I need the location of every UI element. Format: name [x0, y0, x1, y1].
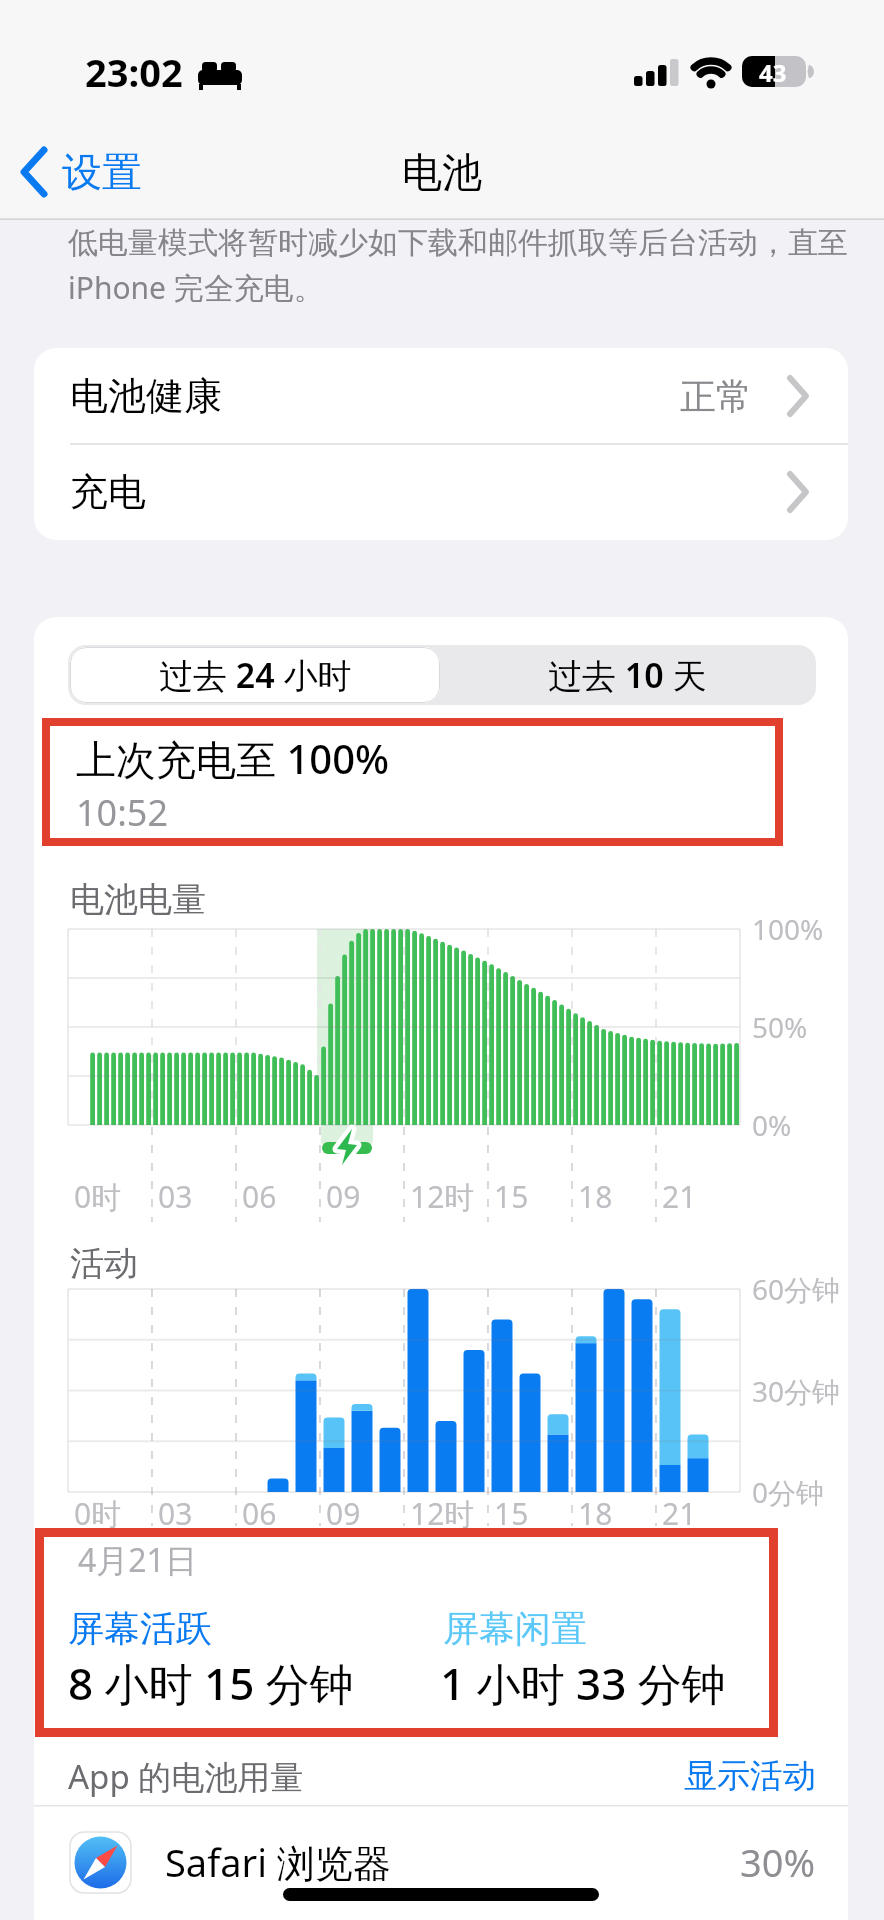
staticText: 03: [158, 1493, 193, 1534]
staticText: 10:52: [76, 788, 169, 837]
staticText: 50%: [752, 1008, 808, 1046]
staticText: 03: [158, 1176, 193, 1217]
staticText: 43: [759, 56, 787, 89]
staticText: 电池健康: [70, 372, 222, 420]
staticText: 18: [578, 1176, 613, 1217]
staticText: 显示活动: [684, 1755, 816, 1797]
staticText: 12时: [410, 1493, 475, 1534]
staticText: 8 小时 15 分钟: [68, 1653, 354, 1713]
staticText: 低电量模式将暂时减少如下载和邮件抓取等后台活动，直至 iPhone 完全充电。: [68, 224, 848, 308]
staticText: 充电: [70, 468, 146, 516]
staticText: 4月21日: [78, 1538, 197, 1582]
staticText: 屏幕活跃: [68, 1606, 212, 1651]
staticText: 过去 24 小时: [159, 652, 352, 698]
staticText: 12时: [410, 1176, 475, 1217]
button[interactable]: [34, 348, 848, 444]
staticText: 100%: [752, 910, 824, 948]
staticText: App 的电池用量: [68, 1754, 304, 1799]
staticText: 上次充电至 100%: [76, 731, 390, 786]
staticText: 06: [242, 1176, 277, 1217]
button[interactable]: [442, 645, 816, 705]
staticText: 09: [326, 1493, 361, 1534]
staticText: 06: [242, 1493, 277, 1534]
staticText: 30%: [740, 1836, 816, 1888]
staticText: 21: [662, 1493, 697, 1534]
button[interactable]: [34, 444, 848, 540]
staticText: 15: [494, 1176, 529, 1217]
staticText: 电池: [402, 147, 482, 197]
staticText: 23:02: [85, 46, 183, 98]
staticText: 18: [578, 1493, 613, 1534]
staticText: 0分钟: [752, 1473, 825, 1511]
staticText: 21: [662, 1176, 697, 1217]
staticText: 30分钟: [752, 1372, 841, 1410]
staticText: 60分钟: [752, 1270, 841, 1308]
button[interactable]: [660, 1746, 820, 1806]
staticText: 0时: [74, 1176, 122, 1217]
staticText: 1 小时 33 分钟: [440, 1653, 726, 1713]
button[interactable]: [20, 140, 160, 204]
button[interactable]: [34, 1806, 848, 1920]
staticText: 正常: [680, 374, 752, 419]
staticText: 0%: [752, 1106, 792, 1144]
button[interactable]: [68, 645, 442, 705]
staticText: 屏幕闲置: [443, 1606, 587, 1651]
staticText: Safari 浏览器: [165, 1836, 391, 1888]
staticText: 09: [326, 1176, 361, 1217]
staticText: 设置: [62, 147, 142, 197]
staticText: 0时: [74, 1493, 122, 1534]
staticText: 电池电量: [70, 878, 206, 921]
staticText: 活动: [70, 1242, 138, 1285]
staticText: 过去 10 天: [548, 652, 707, 698]
staticText: 15: [494, 1493, 529, 1534]
